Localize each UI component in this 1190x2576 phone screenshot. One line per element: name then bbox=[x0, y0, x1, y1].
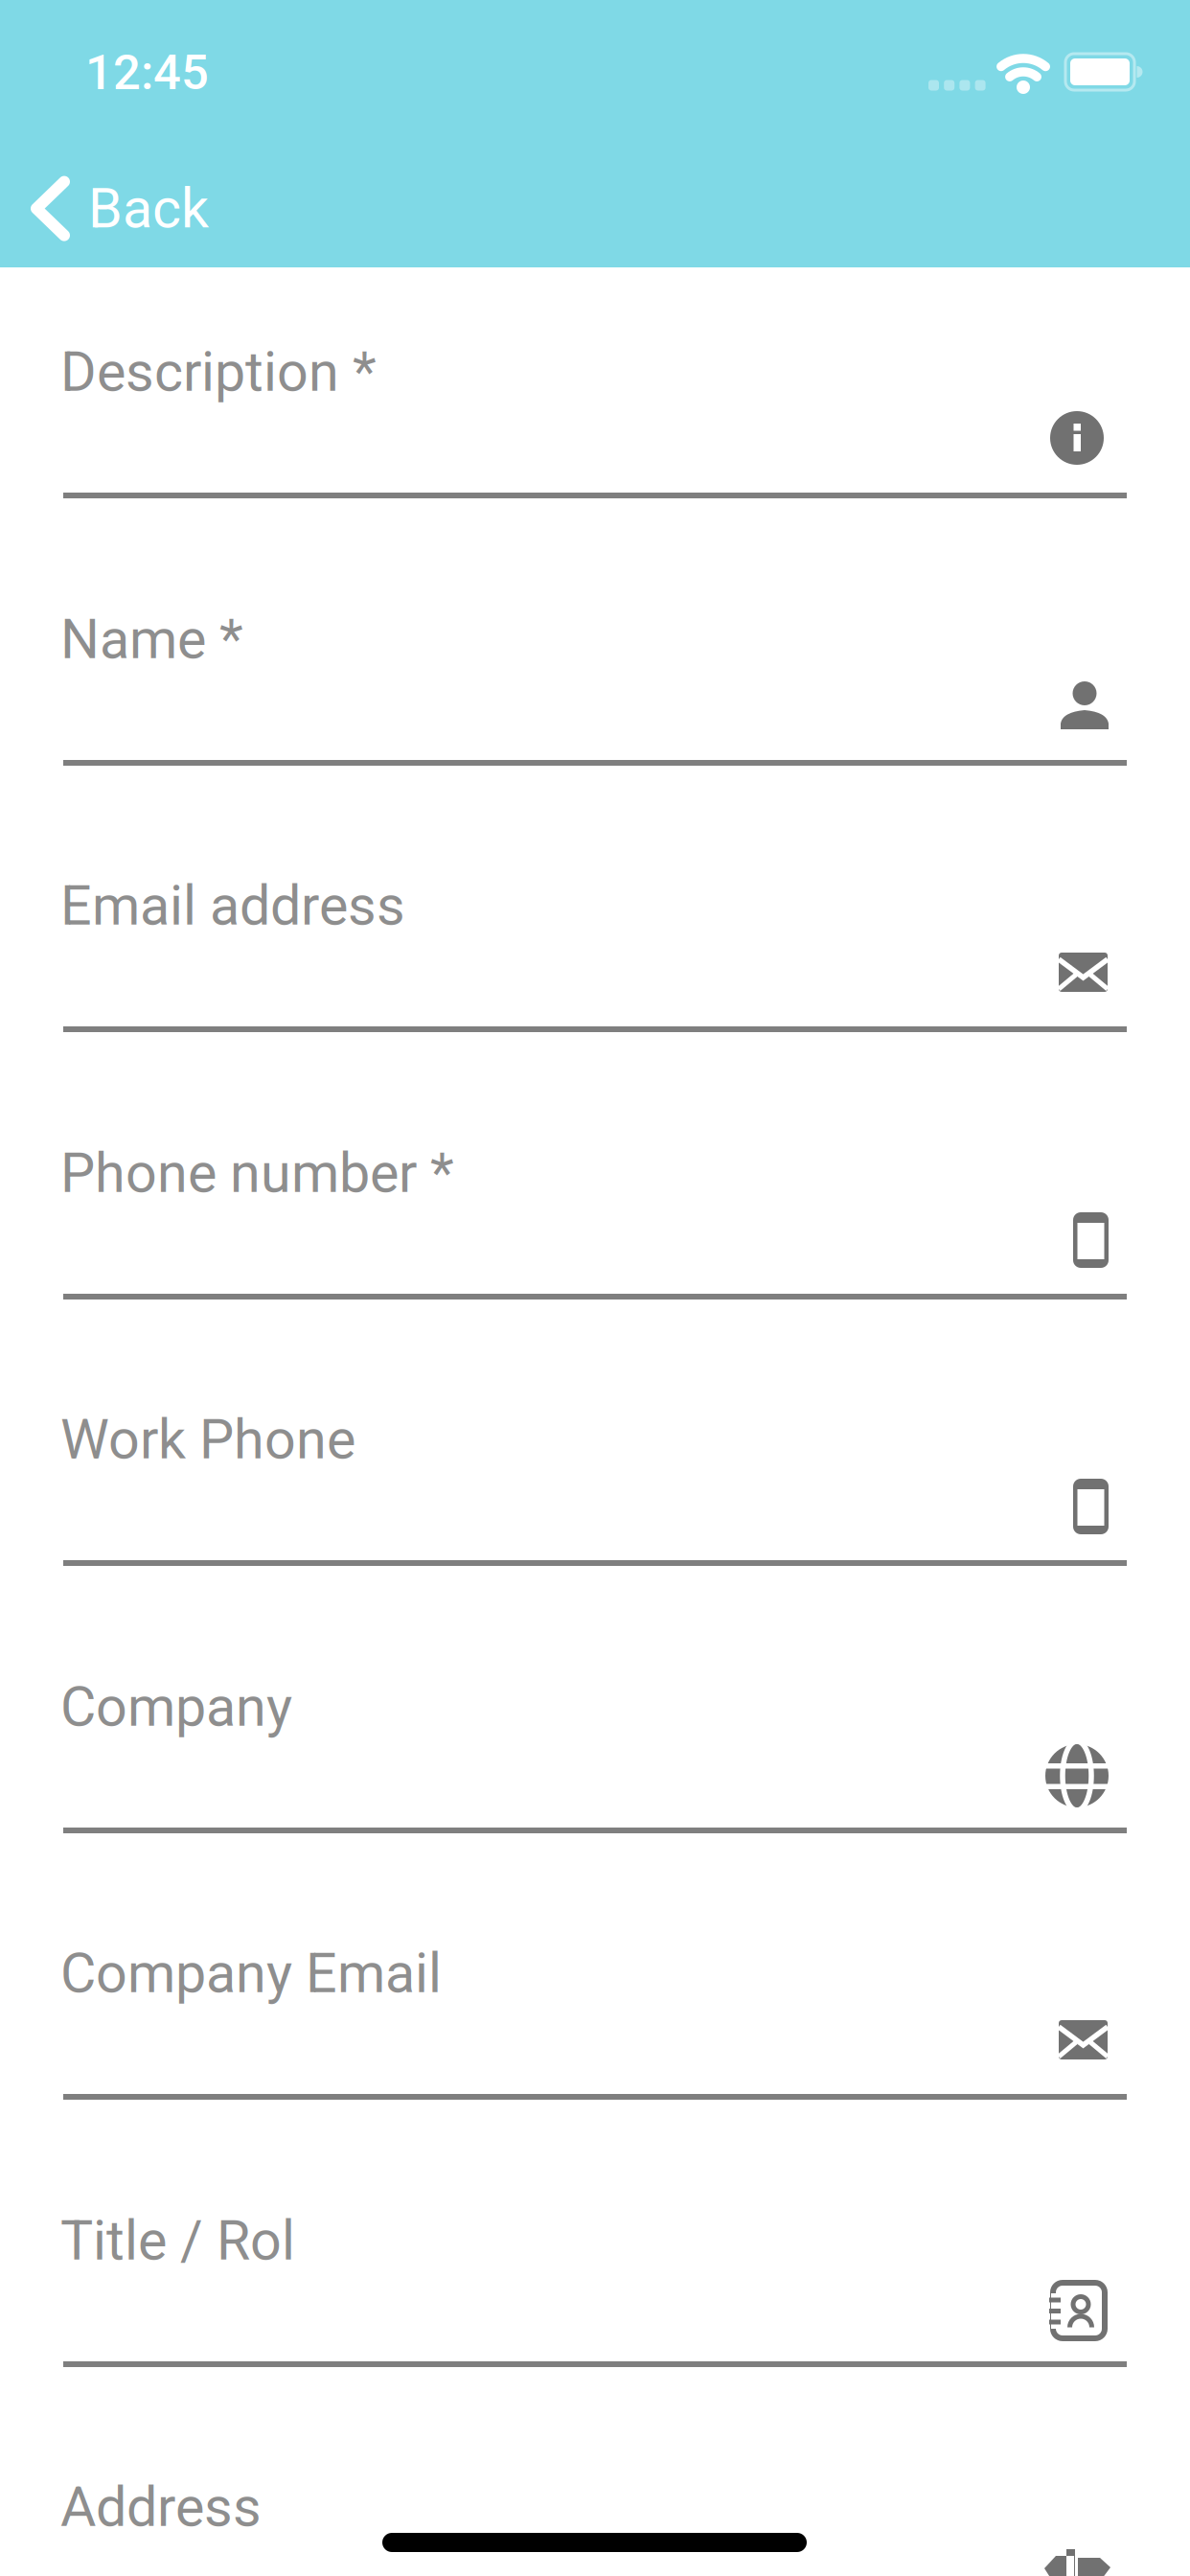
button[interactable]: Company bbox=[63, 1673, 1127, 1833]
button[interactable]: Description * bbox=[63, 338, 1127, 498]
button[interactable]: Back bbox=[31, 176, 209, 241]
staticText: Back bbox=[88, 176, 209, 241]
staticText: 12:45 bbox=[85, 44, 209, 101]
staticText: Company Email bbox=[60, 1941, 442, 2006]
staticText: Email address bbox=[60, 874, 405, 938]
button[interactable]: Company Email bbox=[63, 1940, 1127, 2100]
button[interactable]: Email address bbox=[63, 872, 1127, 1032]
button[interactable]: Address bbox=[63, 2473, 1127, 2576]
staticText: Phone number * bbox=[60, 1141, 454, 1205]
button[interactable]: Phone number * bbox=[63, 1139, 1127, 1299]
button[interactable]: Name * bbox=[63, 606, 1127, 766]
staticText: Company bbox=[60, 1675, 292, 1739]
button[interactable]: Title / Rol bbox=[63, 2207, 1127, 2367]
staticText: Work Phone bbox=[60, 1407, 355, 1472]
staticText: Title / Rol bbox=[60, 2208, 295, 2273]
staticText: Name * bbox=[60, 607, 243, 672]
staticText: Description * bbox=[60, 340, 377, 404]
staticText: Address bbox=[60, 2475, 262, 2539]
button[interactable]: Work Phone bbox=[63, 1406, 1127, 1566]
